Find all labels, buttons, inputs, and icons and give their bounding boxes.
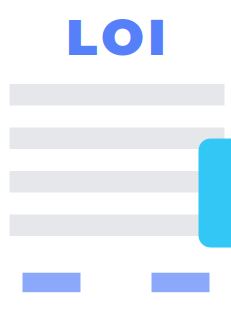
button[interactable]: Signature xyxy=(22,273,80,292)
staticText: LOI xyxy=(66,6,166,68)
button[interactable]: Sign document xyxy=(198,138,231,247)
button[interactable]: Date xyxy=(151,273,209,292)
